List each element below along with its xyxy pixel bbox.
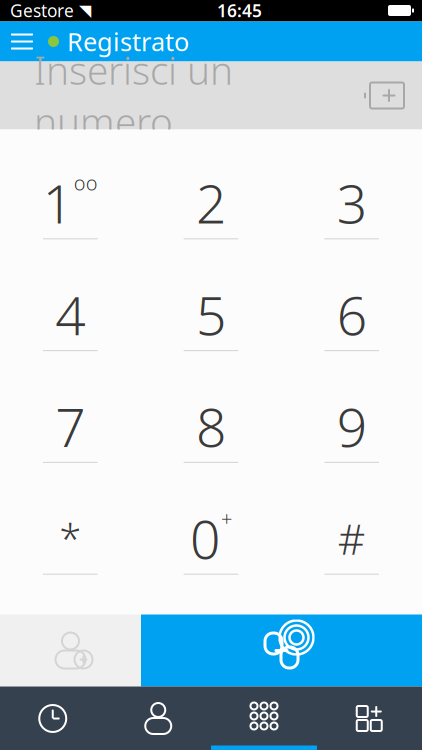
staticText: 0	[190, 503, 220, 574]
staticText: Gestore	[10, 0, 74, 22]
staticText: *	[59, 512, 81, 565]
button[interactable]: 7	[0, 391, 141, 465]
button[interactable]: Recents	[0, 686, 105, 750]
staticText: 7	[55, 391, 85, 462]
button[interactable]: *	[0, 503, 141, 577]
staticText: 9	[337, 391, 367, 462]
staticText: 5	[196, 279, 226, 350]
button[interactable]: Delete	[358, 61, 422, 129]
button[interactable]: 5	[141, 279, 281, 353]
staticText: Registrato	[67, 25, 189, 58]
staticText: 1	[43, 167, 73, 238]
staticText: 6	[337, 279, 367, 350]
button[interactable]: Registrato	[44, 21, 189, 61]
staticText: ◥	[79, 1, 91, 20]
staticText: +	[221, 505, 232, 531]
button[interactable]: Call	[141, 614, 422, 686]
button[interactable]: Keypad	[211, 686, 316, 750]
button[interactable]: #	[281, 503, 422, 577]
staticText: 8	[196, 391, 226, 462]
button[interactable]: 9	[281, 391, 422, 465]
staticText: #	[338, 510, 366, 567]
staticText: 16:45	[217, 0, 262, 22]
staticText: Inserisci un numero	[34, 44, 233, 147]
button[interactable]: 8	[141, 391, 281, 465]
staticText: 2	[196, 167, 226, 238]
button[interactable]: 2	[141, 167, 281, 241]
staticText: oo	[74, 169, 98, 196]
button[interactable]: 6	[281, 279, 422, 353]
button[interactable]: 0	[141, 503, 281, 577]
button[interactable]: Contacts	[105, 686, 211, 750]
button[interactable]: Add contact	[0, 614, 141, 686]
staticText: 4	[55, 279, 85, 350]
button[interactable]: Apps	[316, 686, 422, 750]
button[interactable]: 1	[0, 167, 141, 241]
staticText: 3	[337, 167, 367, 238]
button[interactable]: 4	[0, 279, 141, 353]
button[interactable]: 3	[281, 167, 422, 241]
button[interactable]: Menu	[0, 21, 44, 61]
